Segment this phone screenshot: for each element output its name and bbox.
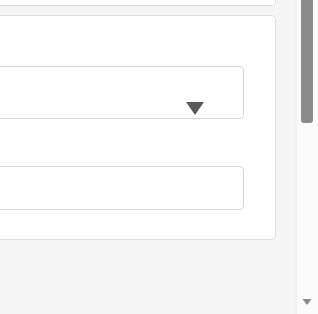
button[interactable]: Scroll thumb xyxy=(301,0,313,123)
button[interactable]: Open dropdown xyxy=(0,66,244,119)
button[interactable]: Scroll down xyxy=(300,294,314,310)
button[interactable] xyxy=(0,0,276,6)
button[interactable]: Text input xyxy=(0,166,244,210)
